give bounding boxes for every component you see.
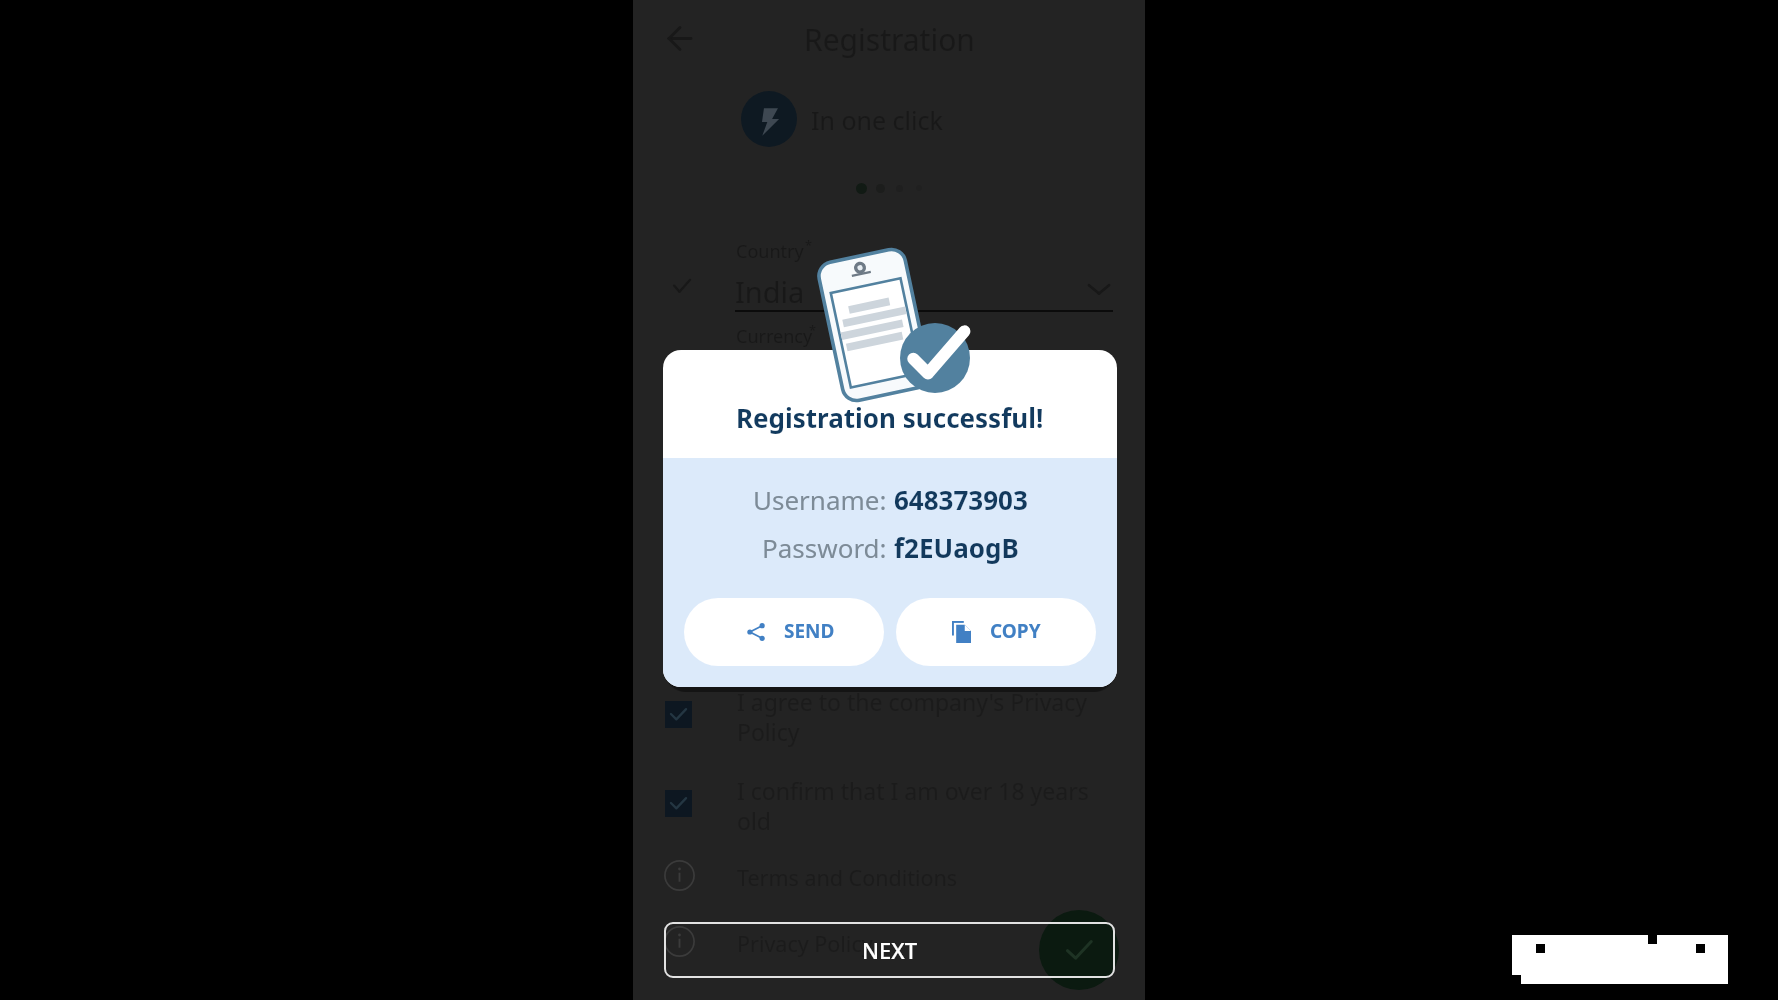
- button[interactable]: I agree to the company's Privacy Policy: [664, 691, 1115, 757]
- button[interactable]: COPY: [896, 598, 1096, 666]
- staticText: Registration: [804, 19, 975, 60]
- staticText: Country: [736, 239, 804, 264]
- staticText: COPY: [990, 618, 1041, 644]
- staticText: *: [809, 321, 817, 339]
- staticText: 648373903: [894, 482, 1028, 517]
- staticText: Username:: [753, 482, 894, 517]
- button[interactable]: I confirm that I am over 18 years old: [664, 780, 1115, 846]
- staticText: Privacy Policy: [737, 929, 873, 958]
- staticText: Password:: [762, 530, 894, 565]
- button[interactable]: NEXT: [664, 922, 1115, 978]
- button[interactable]: Privacy Policy: [664, 924, 1115, 958]
- staticText: I agree to the company's Privacy Policy: [737, 686, 1088, 747]
- staticText: SEND: [784, 618, 835, 644]
- button[interactable]: Confirm: [1039, 910, 1119, 990]
- staticText: India: [735, 272, 805, 311]
- staticText: Registration successful!: [736, 400, 1044, 435]
- staticText: NEXT: [862, 935, 918, 965]
- staticText: In one click: [811, 103, 943, 137]
- button[interactable]: Back: [655, 18, 697, 60]
- staticText: Currency: [736, 324, 813, 349]
- staticText: f2EUaogB: [894, 530, 1019, 565]
- button[interactable]: SEND: [684, 598, 884, 666]
